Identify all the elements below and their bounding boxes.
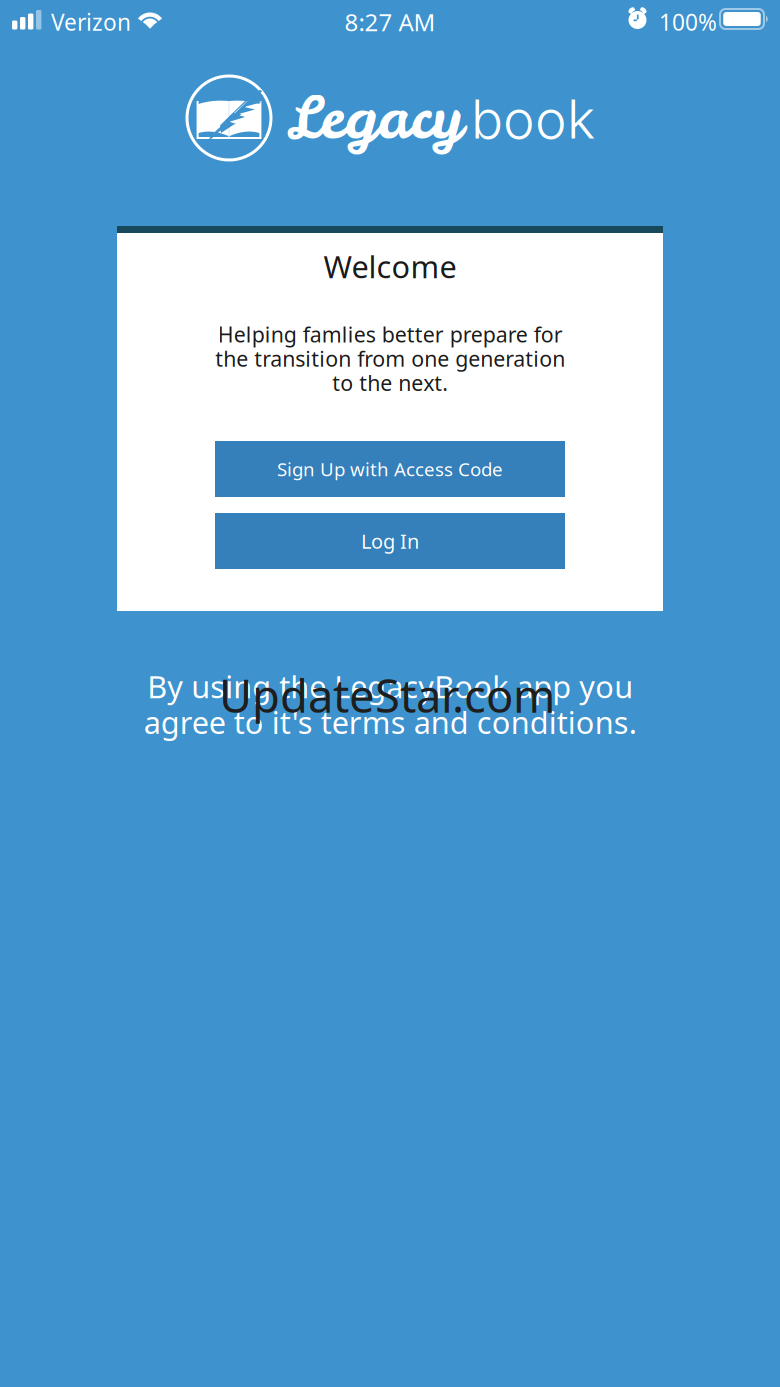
staticText: Legacy (287, 79, 463, 156)
staticText: 8:27 AM (344, 6, 435, 38)
staticText: Welcome (323, 246, 456, 287)
button[interactable]: Log In (215, 513, 565, 569)
staticText: Sign Up with Access Code (277, 457, 503, 481)
staticText: book (471, 87, 595, 151)
staticText: UpdateStar.com (219, 665, 555, 725)
staticText: By using the LegacyBook app you agree to… (143, 666, 636, 742)
staticText: Helping famlies better prepare for the t… (215, 320, 565, 397)
staticText: Verizon (51, 7, 131, 37)
staticText: Log In (361, 528, 419, 554)
button[interactable]: Sign Up with Access Code (215, 441, 565, 497)
staticText: 100% (659, 7, 717, 37)
